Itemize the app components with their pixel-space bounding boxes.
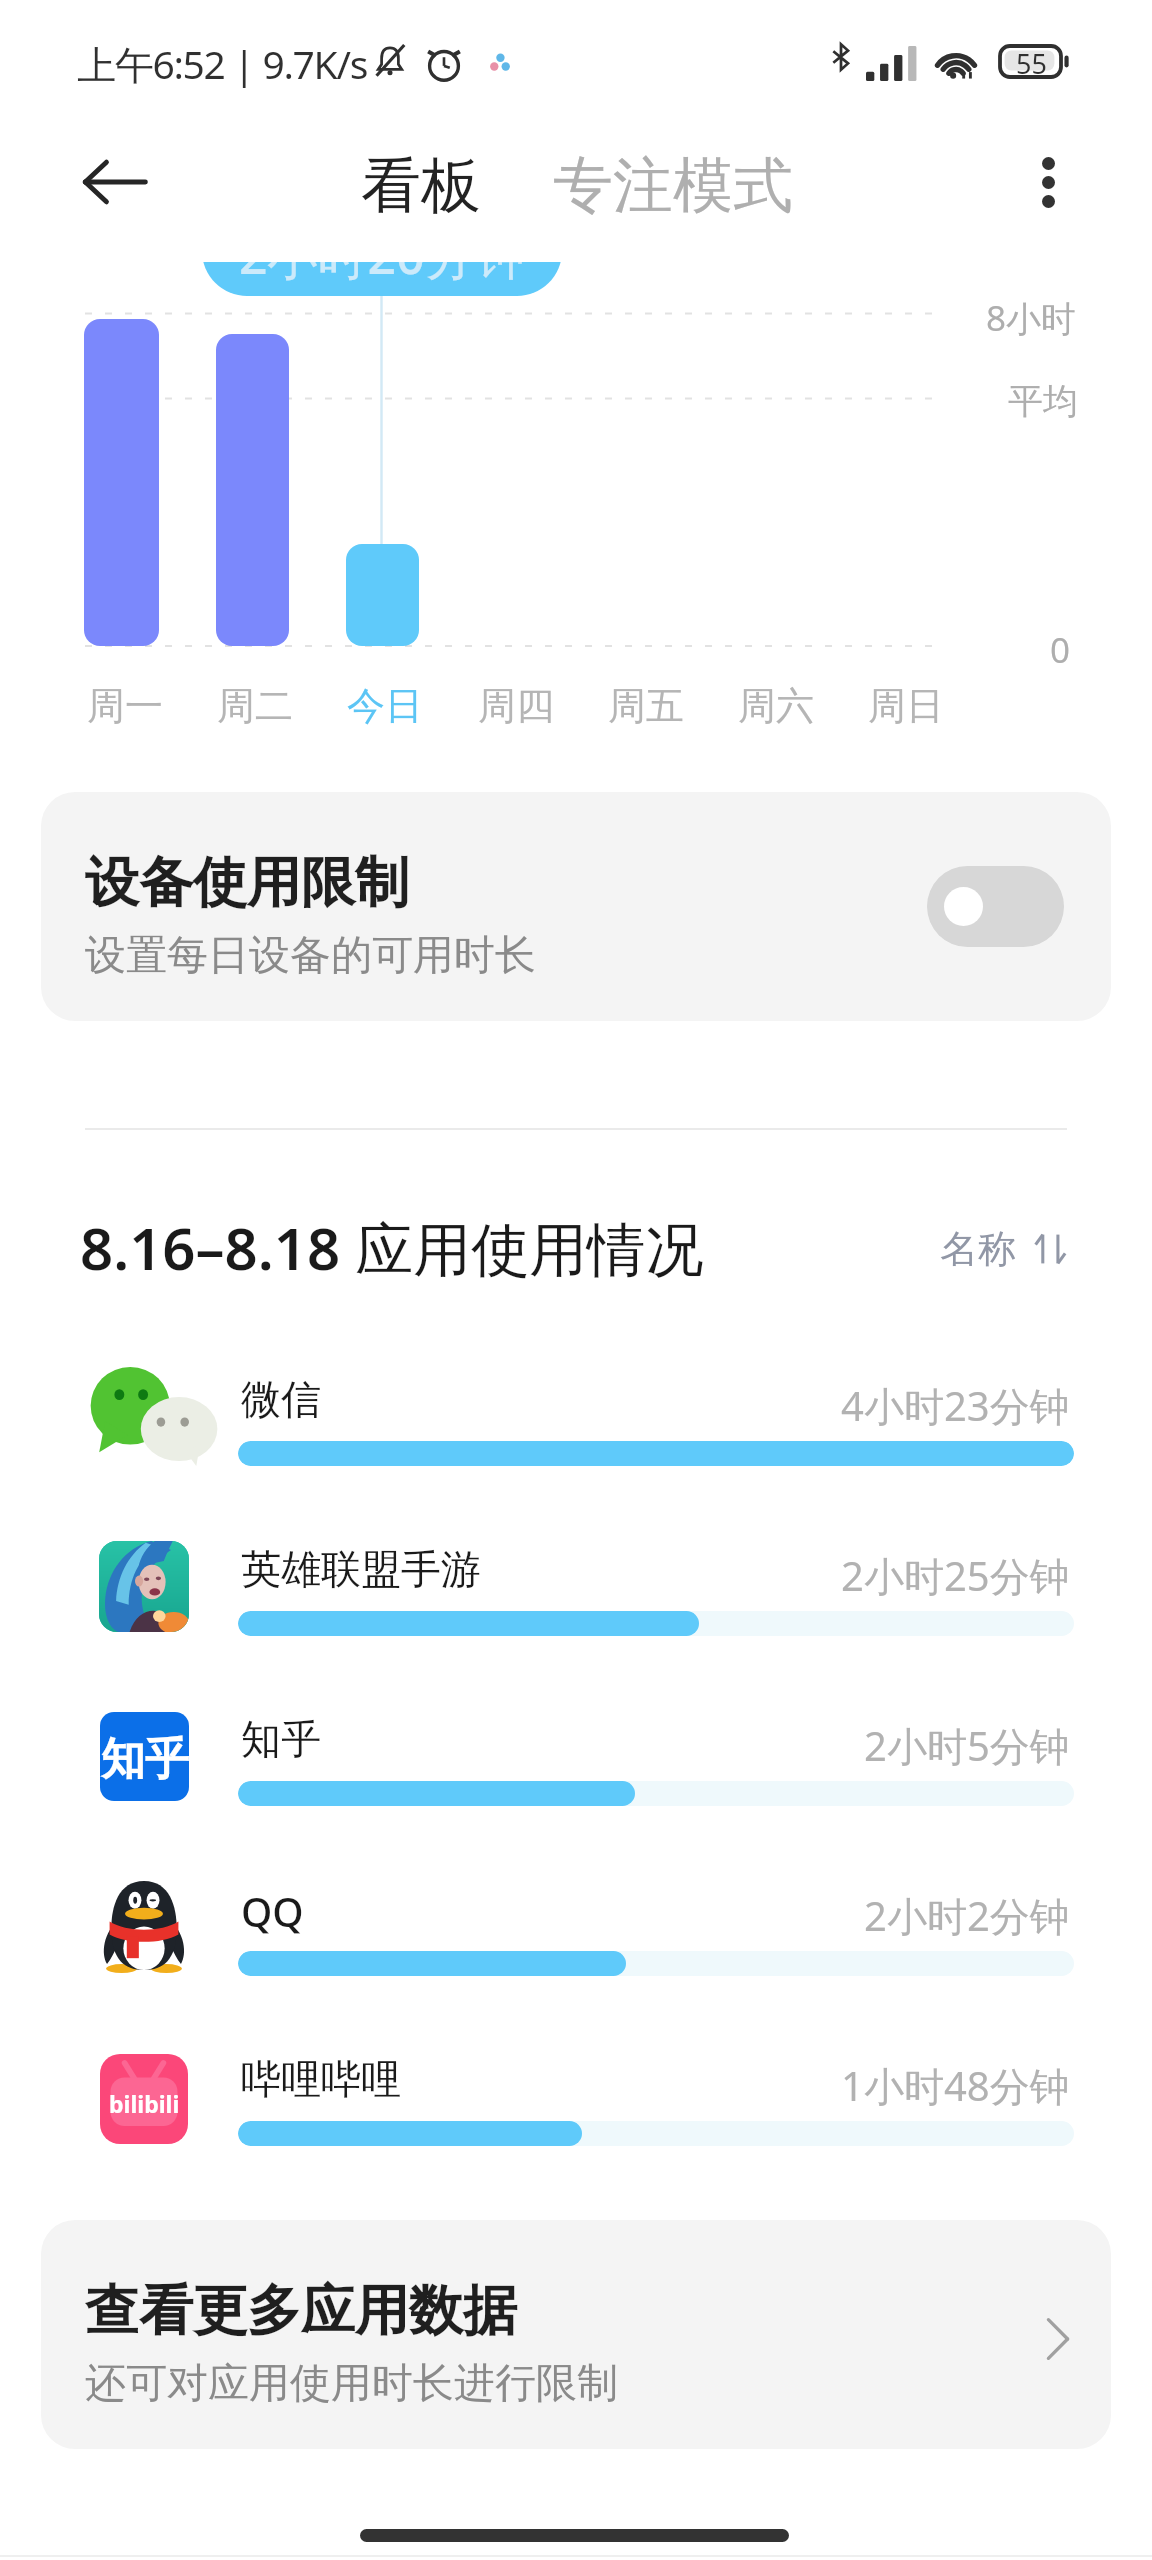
button[interactable]: 英雄联盟手游 <box>0 1518 1152 1686</box>
staticText: 4小时23分钟 <box>841 1378 1070 1433</box>
staticText: 还可对应用使用时长进行限制 <box>85 2358 618 2410</box>
staticText: 设置每日设备的可用时长 <box>85 930 536 982</box>
staticText: 微信 <box>241 1374 321 1424</box>
staticText: 看板 <box>361 148 481 224</box>
button[interactable]: 微信 <box>0 1348 1152 1516</box>
staticText: 0 <box>1050 626 1071 674</box>
button[interactable]: 周日 <box>841 682 971 738</box>
staticText: 周四 <box>478 682 554 730</box>
staticText: 周二 <box>217 682 293 730</box>
staticText: 2小时2分钟 <box>864 1888 1070 1943</box>
staticText: 55 <box>1016 45 1047 78</box>
staticText: 平均 <box>1008 379 1078 423</box>
staticText: 周一 <box>87 682 163 730</box>
button[interactable]: 专注模式 <box>537 136 809 236</box>
staticText: 8.16–8.18 应用使用情况 <box>80 1208 704 1287</box>
staticText: 今日 <box>347 682 423 730</box>
staticText: 知乎 <box>101 1732 189 1787</box>
staticText: 哔哩哔哩 <box>241 2054 401 2104</box>
button[interactable]: 查看更多应用数据 <box>41 2220 1111 2449</box>
button[interactable]: 周四 <box>451 682 581 738</box>
staticText: 2小时5分钟 <box>864 1718 1070 1773</box>
button[interactable]: More options <box>998 132 1098 232</box>
button[interactable]: Device usage limit toggle <box>927 866 1064 947</box>
staticText: 名称 <box>940 1225 1016 1273</box>
staticText: 专注模式 <box>553 148 793 224</box>
button[interactable]: QQ <box>0 1858 1152 2026</box>
button[interactable]: 周二 <box>190 682 320 738</box>
button[interactable]: 设备使用限制 <box>41 792 1111 1021</box>
button[interactable]: 知乎 <box>0 1688 1152 1856</box>
button[interactable]: 周六 <box>711 682 841 738</box>
staticText: 1小时48分钟 <box>841 2058 1070 2113</box>
button[interactable]: bilibili <box>0 2028 1152 2196</box>
staticText: 设备使用限制 <box>85 849 409 917</box>
staticText: bilibili <box>109 2088 180 2119</box>
button[interactable]: 周五 <box>581 682 711 738</box>
staticText: 上午6:52 | 9.7K/s <box>77 37 368 90</box>
button[interactable]: 看板 <box>345 136 497 236</box>
button[interactable]: Back <box>60 127 170 237</box>
button[interactable]: 名称 <box>934 1219 1074 1279</box>
staticText: QQ <box>241 1884 304 1938</box>
staticText: 2小时25分钟 <box>841 1548 1070 1603</box>
staticText: 8小时 <box>986 294 1077 342</box>
staticText: 英雄联盟手游 <box>241 1544 481 1594</box>
button[interactable]: 周一 <box>60 682 190 738</box>
staticText: 周六 <box>738 682 814 730</box>
staticText: 知乎 <box>241 1714 321 1764</box>
staticText: 周五 <box>608 682 684 730</box>
staticText: 周日 <box>868 682 944 730</box>
button[interactable]: 今日 <box>320 682 450 738</box>
staticText: 查看更多应用数据 <box>85 2277 517 2345</box>
